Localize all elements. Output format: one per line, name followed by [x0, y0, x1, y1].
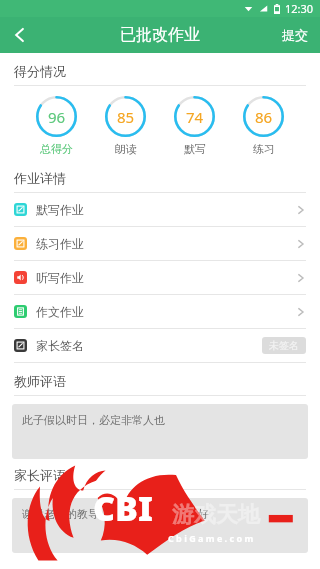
- staticText: 未签名: [269, 339, 299, 352]
- staticText: 练习作业: [36, 236, 84, 251]
- staticText: 12:30: [285, 1, 314, 16]
- staticText: 作业详情: [14, 170, 66, 186]
- staticText: 已批改作业: [120, 25, 200, 45]
- staticText: 默写作业: [36, 202, 84, 217]
- staticText: 得分情况: [14, 63, 66, 79]
- staticText: 默写: [184, 142, 206, 156]
- staticText: 家长评语: [14, 467, 66, 483]
- staticText: 85: [117, 107, 135, 127]
- button[interactable]: 默写作业: [0, 193, 320, 226]
- staticText: 练习: [253, 142, 275, 156]
- button[interactable]: 作文作业: [0, 295, 320, 328]
- staticText: 家长签名: [36, 338, 84, 353]
- staticText: 听写作业: [36, 270, 84, 285]
- staticText: 游戏天地: [172, 501, 260, 529]
- staticText: 总得分: [40, 142, 73, 156]
- staticText: 96: [48, 107, 66, 127]
- staticText: 74: [186, 107, 204, 127]
- button[interactable]: 听写作业: [0, 261, 320, 294]
- button[interactable]: 提交: [270, 19, 320, 51]
- button[interactable]: 谢谢老师的教导，我也会尽我所能好好: [12, 498, 308, 553]
- button[interactable]: 练习作业: [0, 227, 320, 260]
- staticText: C b i G a m e . c o m: [168, 532, 254, 544]
- button[interactable]: 家长签名: [0, 329, 320, 362]
- button[interactable]: Back: [0, 17, 40, 53]
- staticText: 提交: [282, 27, 308, 43]
- staticText: 作文作业: [36, 304, 84, 319]
- staticText: CBI: [93, 485, 153, 531]
- staticText: 朗读: [115, 142, 137, 156]
- staticText: 此子假以时日，必定非常人也: [22, 413, 165, 427]
- staticText: 谢谢老师的教导，我也会尽我所能好好: [22, 507, 209, 521]
- button[interactable]: 此子假以时日，必定非常人也: [12, 404, 308, 459]
- staticText: 教师评语: [14, 373, 66, 389]
- staticText: 86: [255, 107, 273, 127]
